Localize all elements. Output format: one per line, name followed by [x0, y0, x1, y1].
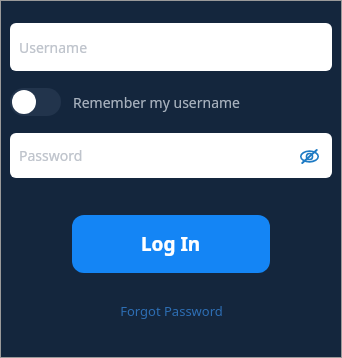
button[interactable]: Username	[10, 23, 332, 71]
staticText: Forgot Password	[120, 302, 223, 320]
staticText: Password	[19, 146, 83, 165]
button[interactable]: Show password	[295, 142, 323, 170]
button[interactable]: Password	[10, 133, 332, 178]
button[interactable]: Forgot Password	[112, 298, 231, 324]
staticText: Log In	[141, 231, 201, 257]
button[interactable]: Log In	[72, 215, 270, 273]
button[interactable]: Remember my username	[10, 88, 332, 116]
staticText: Remember my username	[73, 93, 241, 112]
staticText: Username	[19, 38, 88, 57]
